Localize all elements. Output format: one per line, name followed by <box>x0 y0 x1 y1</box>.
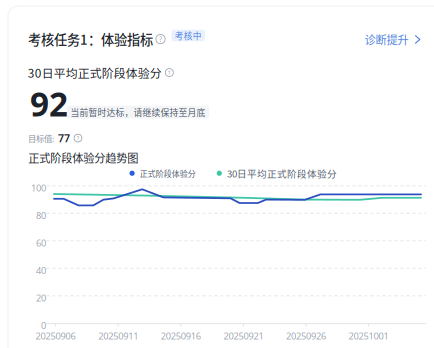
staticText: 92 <box>30 81 68 126</box>
staticText: 20 <box>36 292 46 304</box>
button[interactable]: 目标值说明 <box>70 134 82 142</box>
staticText: 20250916 <box>161 330 201 342</box>
staticText: 30日平均正式阶段体验分 <box>227 166 337 180</box>
staticText: 正式阶段体验分趋势图 <box>28 149 138 166</box>
staticText: 80 <box>36 209 46 221</box>
staticText: 目标值: <box>28 132 54 144</box>
staticText: ? <box>168 68 171 77</box>
staticText: 0 <box>41 319 46 331</box>
button[interactable]: 体验分说明 <box>162 69 173 77</box>
staticText: ? <box>76 134 79 142</box>
staticText: 60 <box>36 237 46 249</box>
staticText: 考核任务1：体验指标 <box>28 29 153 49</box>
button[interactable]: 指标说明 <box>153 34 165 44</box>
staticText: 当前暂时达标，请继续保持至月底 <box>70 106 205 118</box>
staticText: ? <box>159 34 162 44</box>
staticText: 正式阶段体验分 <box>140 167 196 179</box>
staticText: 40 <box>36 264 46 276</box>
staticText: 20250921 <box>223 330 263 342</box>
staticText: 20251001 <box>349 330 389 342</box>
staticText: 20250906 <box>36 330 76 342</box>
staticText: 30日平均正式阶段体验分 <box>28 64 162 81</box>
button[interactable]: 诊断提升 <box>364 31 422 48</box>
staticText: 20250911 <box>98 330 138 342</box>
staticText: 100 <box>31 182 46 194</box>
staticText: 77 <box>58 131 70 145</box>
staticText: 20250926 <box>286 330 326 342</box>
staticText: 考核中 <box>175 29 202 42</box>
staticText: 诊断提升 <box>364 31 408 48</box>
